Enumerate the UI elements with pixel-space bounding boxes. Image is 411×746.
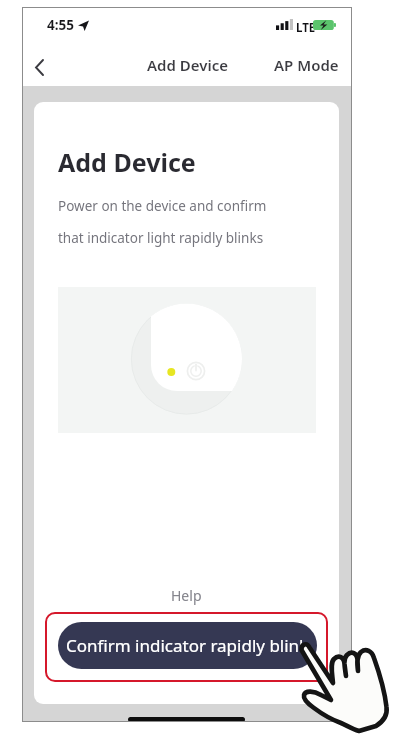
- button[interactable]: AP Mode: [261, 49, 352, 81]
- staticText: 4:55: [47, 16, 74, 34]
- staticText: Add Device: [58, 145, 196, 179]
- button[interactable]: Back: [25, 53, 53, 81]
- staticText: AP Mode: [274, 55, 339, 75]
- button[interactable]: Add Device: [147, 55, 228, 75]
- staticText: that indicator light rapidly blinks: [58, 229, 264, 247]
- button[interactable]: Confirm indicator rapidly blink: [58, 622, 317, 669]
- staticText: LTE: [296, 20, 316, 36]
- staticText: Confirm indicator rapidly blink: [66, 634, 309, 657]
- staticText: Power on the device and confirm: [58, 197, 267, 215]
- button[interactable]: Help: [34, 583, 339, 607]
- staticText: Help: [171, 586, 202, 605]
